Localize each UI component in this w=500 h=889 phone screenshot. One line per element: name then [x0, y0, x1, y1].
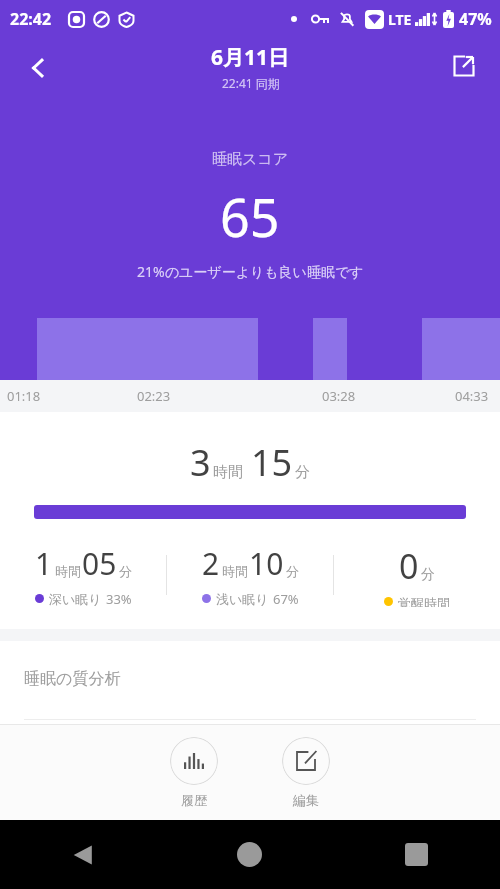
staticText: 1	[35, 543, 53, 584]
staticText: 03:28	[322, 387, 356, 405]
button[interactable]: Home	[166, 820, 333, 889]
staticText: LTE	[388, 10, 412, 29]
staticText: 分	[421, 566, 435, 584]
staticText: 睡眠スコア	[212, 150, 289, 169]
staticText: 時間	[55, 563, 81, 579]
staticText: 01:18	[7, 387, 41, 405]
staticText: 6月11日	[211, 43, 290, 72]
staticText: 47%	[459, 8, 492, 30]
staticText: 05	[82, 543, 117, 584]
staticText: 65	[220, 181, 280, 252]
staticText: 33%	[106, 590, 132, 607]
staticText: 時間	[213, 463, 243, 482]
button[interactable]: 編集	[278, 733, 334, 812]
staticText: 02:23	[137, 387, 171, 405]
staticText: 15	[251, 438, 293, 487]
staticText: 深い眠り	[49, 591, 102, 607]
button[interactable]: Back	[0, 820, 166, 889]
staticText: 04:33	[455, 387, 489, 405]
button[interactable]: Recents	[333, 820, 500, 889]
staticText: 履歴	[181, 792, 207, 808]
staticText: 22:42	[10, 8, 52, 30]
button[interactable]: Back	[14, 44, 62, 92]
staticText: 覚醒時間	[398, 595, 450, 607]
staticText: 浅い眠り	[216, 591, 269, 607]
staticText: 入眠が遅すぎます	[185, 754, 315, 774]
button[interactable]: 履歴	[166, 733, 222, 812]
staticText: 睡眠の質分析	[24, 669, 121, 689]
staticText: 時間	[222, 563, 248, 579]
staticText: 分	[295, 463, 310, 482]
staticText: 0	[399, 543, 419, 589]
staticText: 分	[119, 563, 132, 579]
staticText: 10	[249, 543, 284, 584]
staticText: 分	[286, 563, 299, 579]
staticText: 21%のユーザーよりも良い睡眠です	[137, 262, 364, 281]
staticText: 67%	[273, 590, 299, 607]
staticText: 3	[190, 438, 211, 487]
staticText: 2	[202, 543, 220, 584]
staticText: 22:41 同期	[222, 75, 280, 91]
staticText: 編集	[293, 792, 319, 808]
button[interactable]: Share	[440, 42, 488, 90]
